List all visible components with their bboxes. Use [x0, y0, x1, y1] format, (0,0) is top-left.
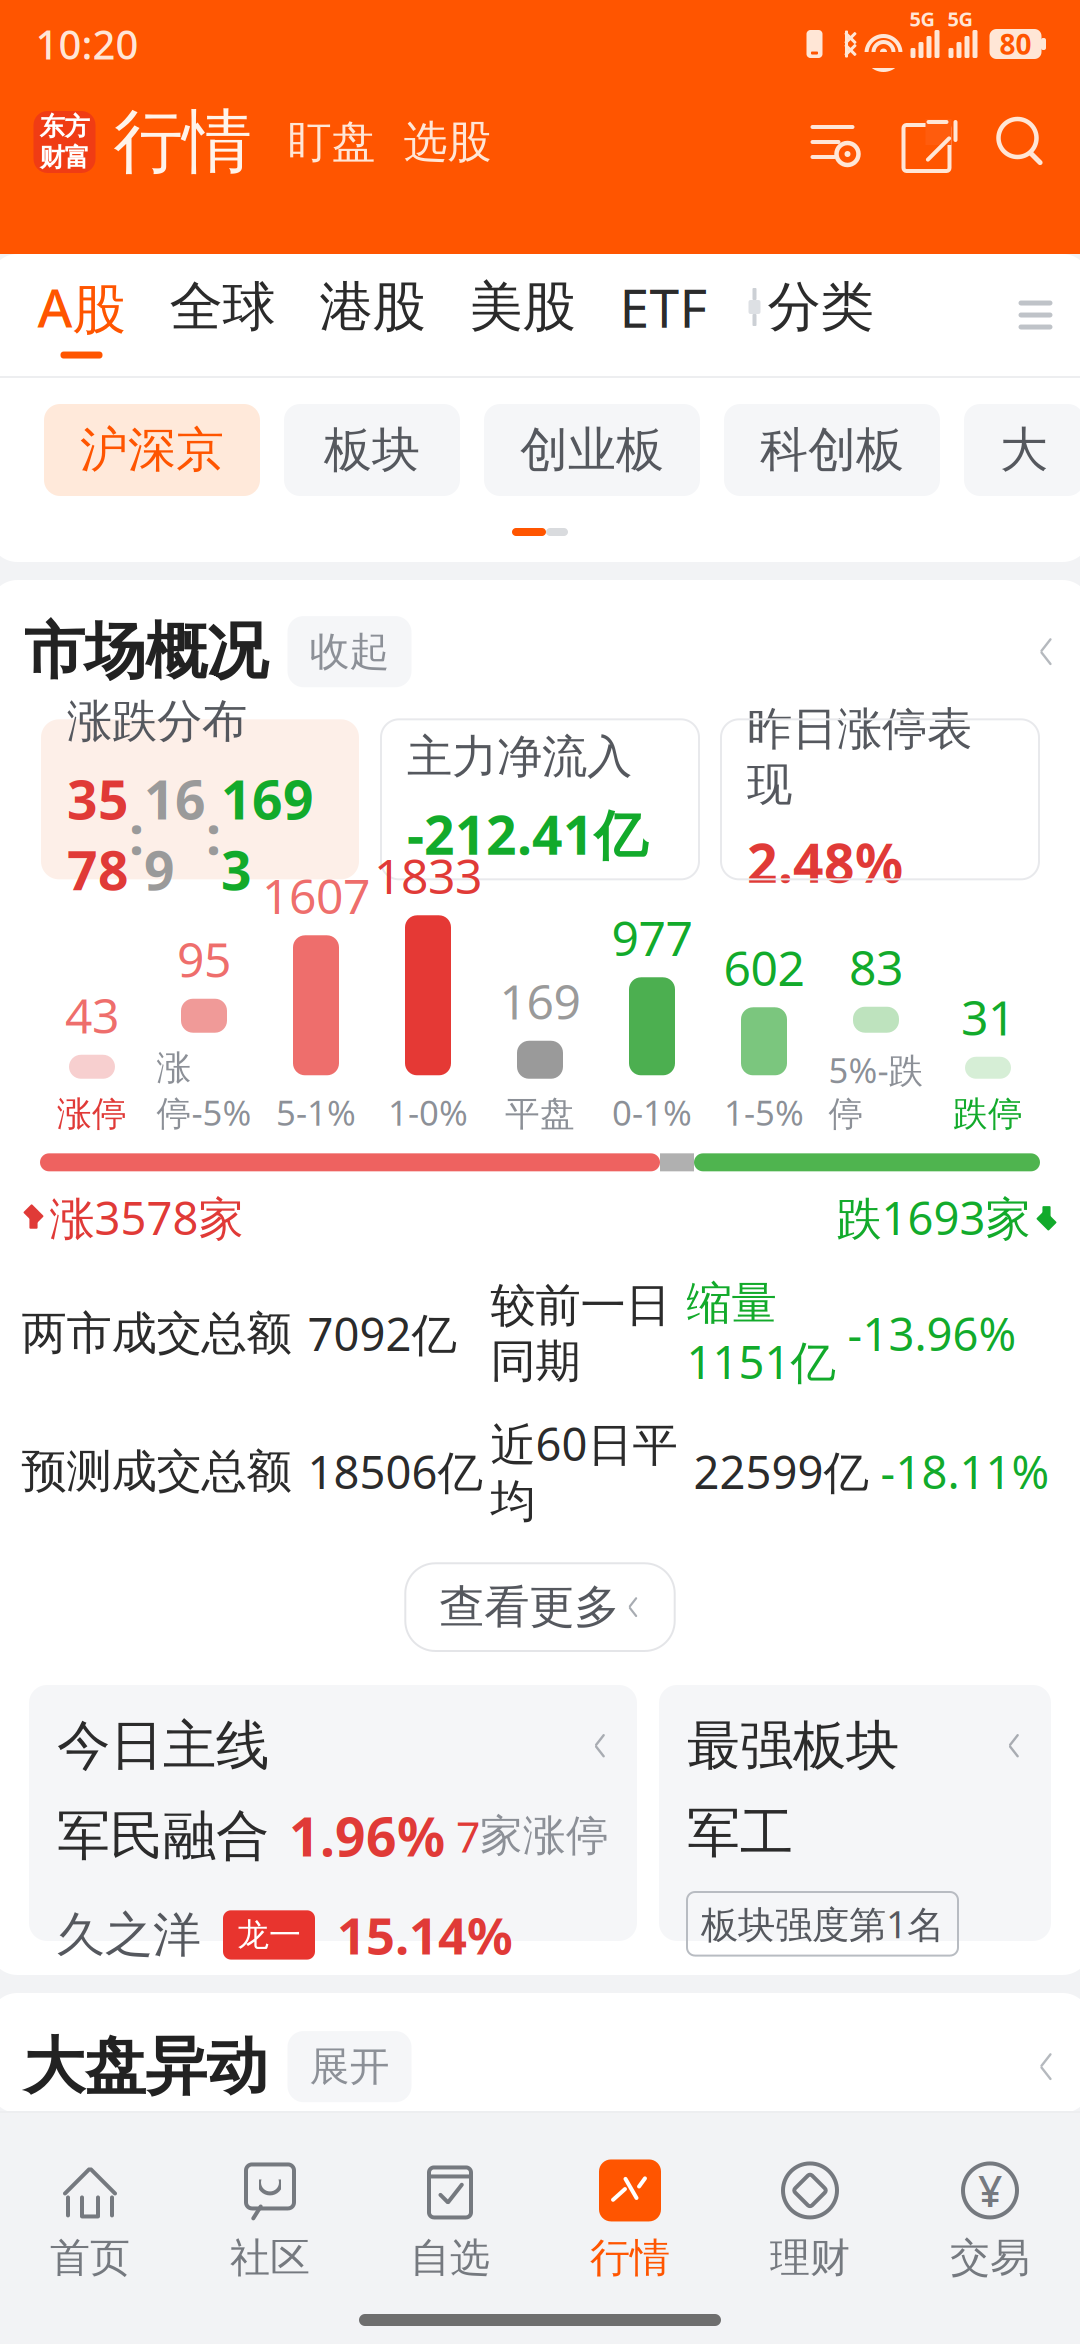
staticText: 龙一: [237, 1915, 301, 1955]
button[interactable]: 行情: [540, 2156, 720, 2286]
staticText: 首页: [50, 2233, 130, 2282]
button[interactable]: 大: [964, 404, 1080, 496]
staticText: 2.48%: [747, 827, 903, 897]
staticText: 7: [456, 1808, 480, 1864]
button[interactable]: ETF: [597, 272, 729, 358]
staticText: 沪深京: [80, 420, 224, 479]
staticText: 1693: [221, 763, 314, 905]
staticText: 龙二: [281, 2009, 345, 2048]
button[interactable]: 查看更多: [405, 1563, 675, 1651]
staticText: 板块: [324, 420, 420, 479]
staticText: 收起: [309, 627, 389, 676]
button[interactable]: 盯盘: [273, 105, 389, 179]
button[interactable]: 科创板: [724, 404, 940, 496]
staticText: 43: [65, 983, 119, 1047]
staticText: 80: [999, 25, 1031, 63]
staticText: 跌停: [953, 1093, 1023, 1135]
staticText: 盯盘: [287, 115, 375, 169]
staticText: 大盘异动: [23, 2029, 267, 2104]
staticText: 涨3578家: [49, 1187, 243, 1247]
button[interactable]: 搜索: [952, 116, 1046, 168]
staticText: 交易: [950, 2233, 1030, 2282]
staticText: 5-1%: [276, 1089, 356, 1135]
button[interactable]: 沪深京: [44, 404, 260, 496]
staticText: 1833: [374, 844, 482, 907]
button[interactable]: 自选: [360, 2156, 540, 2286]
button[interactable]: 最强板块: [659, 1685, 1051, 1941]
button[interactable]: 板块: [284, 404, 460, 496]
button[interactable]: ¥: [900, 2156, 1080, 2286]
staticText: 31: [961, 985, 1015, 1049]
staticText: 市场概况: [23, 614, 267, 689]
staticText: 0-1%: [612, 1089, 692, 1135]
button[interactable]: 选股: [389, 105, 505, 179]
staticText: 分类: [767, 274, 873, 340]
button[interactable]: 全球: [147, 274, 297, 356]
staticText: ETF: [619, 272, 707, 342]
button[interactable]: 主力净流入: [381, 719, 699, 879]
staticText: 1-5%: [724, 1089, 804, 1135]
staticText: ¥: [978, 2162, 1002, 2219]
staticText: 15.14%: [337, 1901, 513, 1969]
staticText: -18.11%: [880, 1441, 1049, 1501]
staticText: :: [206, 799, 221, 870]
staticText: 19.99%: [849, 1984, 979, 2118]
staticText: 久之洋: [57, 1905, 201, 1964]
staticText: 军民融合: [57, 1803, 269, 1869]
staticText: 1.96%: [289, 1800, 445, 1871]
staticText: 大: [1000, 420, 1048, 479]
staticText: 今日主线: [57, 1713, 269, 1778]
staticText: 涨停: [57, 1093, 127, 1135]
staticText: 5%-跌停: [828, 1047, 923, 1135]
staticText: 涨跌分布: [67, 694, 247, 749]
staticText: 预测成交总额: [21, 1443, 291, 1499]
button[interactable]: 大盘异动: [0, 2029, 1080, 2104]
staticText: 全球: [169, 274, 275, 340]
button[interactable]: 涨跌分布: [41, 719, 359, 879]
button[interactable]: 昨日涨停表现: [721, 719, 1039, 879]
button[interactable]: 盯盘设置: [806, 118, 858, 166]
staticText: 查看更多: [439, 1579, 619, 1635]
staticText: 两市成交总额: [21, 1306, 291, 1361]
staticText: 科创板: [760, 420, 904, 479]
button[interactable]: 市场概况: [0, 614, 1080, 689]
staticText: 平盘: [505, 1093, 575, 1135]
staticText: 近60日平均: [490, 1413, 677, 1529]
staticText: -13.96%: [847, 1303, 1016, 1364]
staticText: A股: [37, 271, 125, 343]
staticText: 涨停-5%: [156, 1047, 251, 1135]
button[interactable]: 今日主线: [29, 1685, 637, 1941]
staticText: 7092亿: [307, 1303, 456, 1364]
button[interactable]: 社区: [180, 2156, 360, 2286]
staticText: 美股: [469, 274, 575, 340]
staticText: 社区: [230, 2233, 310, 2282]
staticText: 江龙船艇: [57, 1999, 249, 2058]
staticText: 港股: [319, 274, 425, 340]
staticText: 5G: [909, 5, 934, 32]
button[interactable]: 首页: [0, 2156, 180, 2286]
staticText: 较前一日同期: [490, 1278, 670, 1389]
button[interactable]: 理财: [720, 2156, 900, 2286]
staticText: 自选: [410, 2233, 490, 2282]
button[interactable]: 更多分类: [1006, 288, 1064, 341]
staticText: 理财: [770, 2233, 850, 2282]
staticText: 10:20: [35, 17, 138, 70]
button[interactable]: A股: [15, 271, 147, 359]
staticText: 1-0%: [388, 1089, 468, 1135]
button[interactable]: 分类: [729, 274, 873, 356]
staticText: 83: [849, 935, 903, 999]
button[interactable]: 港股: [297, 274, 447, 356]
button[interactable]: 美股: [447, 274, 597, 356]
staticText: 3578: [67, 763, 129, 905]
staticText: 创业板: [520, 420, 664, 479]
button[interactable]: 东方: [33, 99, 251, 185]
staticText: 602: [723, 936, 804, 999]
staticText: 977: [611, 906, 692, 969]
staticText: 板块强度第1名: [701, 1899, 944, 1949]
staticText: 主力净流入: [407, 729, 632, 785]
button[interactable]: 创业板: [484, 404, 700, 496]
staticText: 169: [144, 763, 206, 905]
button[interactable]: 分享: [858, 114, 952, 170]
staticText: 跌1693家: [836, 1187, 1030, 1247]
staticText: 缩量1151亿: [686, 1275, 835, 1391]
